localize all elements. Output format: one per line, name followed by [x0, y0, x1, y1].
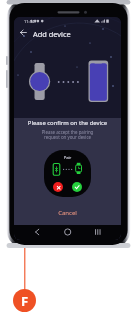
staticText: Please confirm on the device [14, 119, 121, 127]
staticText: F [21, 292, 29, 310]
staticText: 11:34 [24, 19, 35, 24]
staticText: Please accept the pairing [14, 129, 121, 135]
button[interactable]: Step F [13, 289, 36, 312]
button[interactable]: Home [59, 226, 76, 239]
button[interactable]: Back [17, 26, 30, 39]
staticText: request on your device [14, 134, 121, 140]
staticText: Cancel [58, 209, 77, 217]
staticText: Add device [33, 29, 71, 39]
button[interactable]: Reject pairing [53, 182, 63, 192]
staticText: Pair [44, 155, 91, 161]
button[interactable]: Cancel [14, 206, 121, 219]
button[interactable]: Accept pairing [72, 182, 82, 192]
button[interactable]: Recent apps [88, 226, 105, 239]
button[interactable]: Back [29, 226, 46, 239]
